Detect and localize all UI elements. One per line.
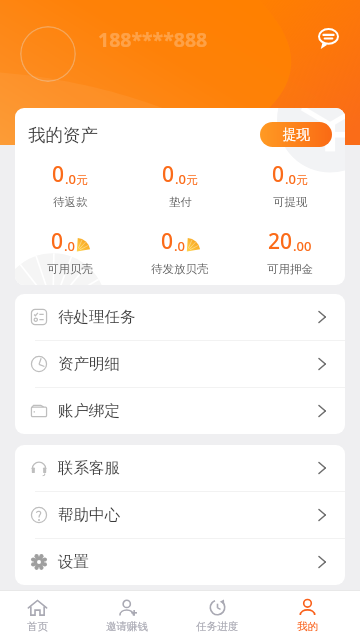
- button[interactable]: 帮助中心: [15, 492, 345, 538]
- staticText: 资产明细: [58, 354, 120, 374]
- staticText: 账户绑定: [58, 401, 120, 421]
- staticText: 邀请赚钱: [106, 620, 148, 633]
- staticText: 首页: [27, 620, 48, 633]
- button[interactable]: 任务进度: [172, 598, 262, 633]
- button[interactable]: 首页: [0, 598, 82, 633]
- staticText: 任务进度: [196, 620, 238, 633]
- staticText: 我的: [297, 620, 318, 633]
- staticText: 我的资产: [28, 124, 98, 146]
- button[interactable]: 待处理任务: [15, 294, 345, 340]
- button[interactable]: Messages: [313, 23, 343, 53]
- staticText: 待返款: [53, 195, 88, 209]
- staticText: 可用贝壳: [47, 262, 93, 276]
- staticText: 可提现: [273, 195, 308, 209]
- button[interactable]: 资产明细: [15, 341, 345, 387]
- button[interactable]: 提现: [260, 122, 332, 147]
- staticText: 元: [296, 173, 308, 187]
- staticText: 0: [162, 160, 175, 189]
- staticText: .0: [285, 170, 296, 188]
- button[interactable]: 账户绑定: [15, 388, 345, 434]
- staticText: 垫付: [169, 195, 192, 209]
- staticText: .0: [175, 170, 186, 188]
- staticText: 元: [76, 173, 88, 187]
- staticText: .00: [293, 237, 312, 255]
- staticText: 提现: [283, 126, 310, 143]
- staticText: 0: [52, 160, 65, 189]
- staticText: .0: [174, 237, 185, 255]
- staticText: 待处理任务: [58, 307, 136, 327]
- staticText: 0: [272, 160, 285, 189]
- button[interactable]: 联系客服: [15, 445, 345, 491]
- staticText: 元: [186, 173, 198, 187]
- staticText: 可用押金: [267, 262, 313, 276]
- button[interactable]: 邀请赚钱: [82, 598, 172, 633]
- staticText: 188****888: [98, 26, 208, 53]
- staticText: .0: [64, 237, 75, 255]
- button[interactable]: 我的: [262, 598, 352, 633]
- staticText: 联系客服: [58, 458, 120, 478]
- staticText: 0: [161, 227, 174, 256]
- staticText: 帮助中心: [58, 505, 120, 525]
- staticText: .0: [65, 170, 76, 188]
- button[interactable]: Avatar: [20, 26, 76, 82]
- staticText: 20: [268, 227, 293, 256]
- staticText: 0: [51, 227, 64, 256]
- staticText: 设置: [58, 552, 89, 572]
- staticText: 待发放贝壳: [151, 262, 209, 276]
- button[interactable]: 设置: [15, 539, 345, 585]
